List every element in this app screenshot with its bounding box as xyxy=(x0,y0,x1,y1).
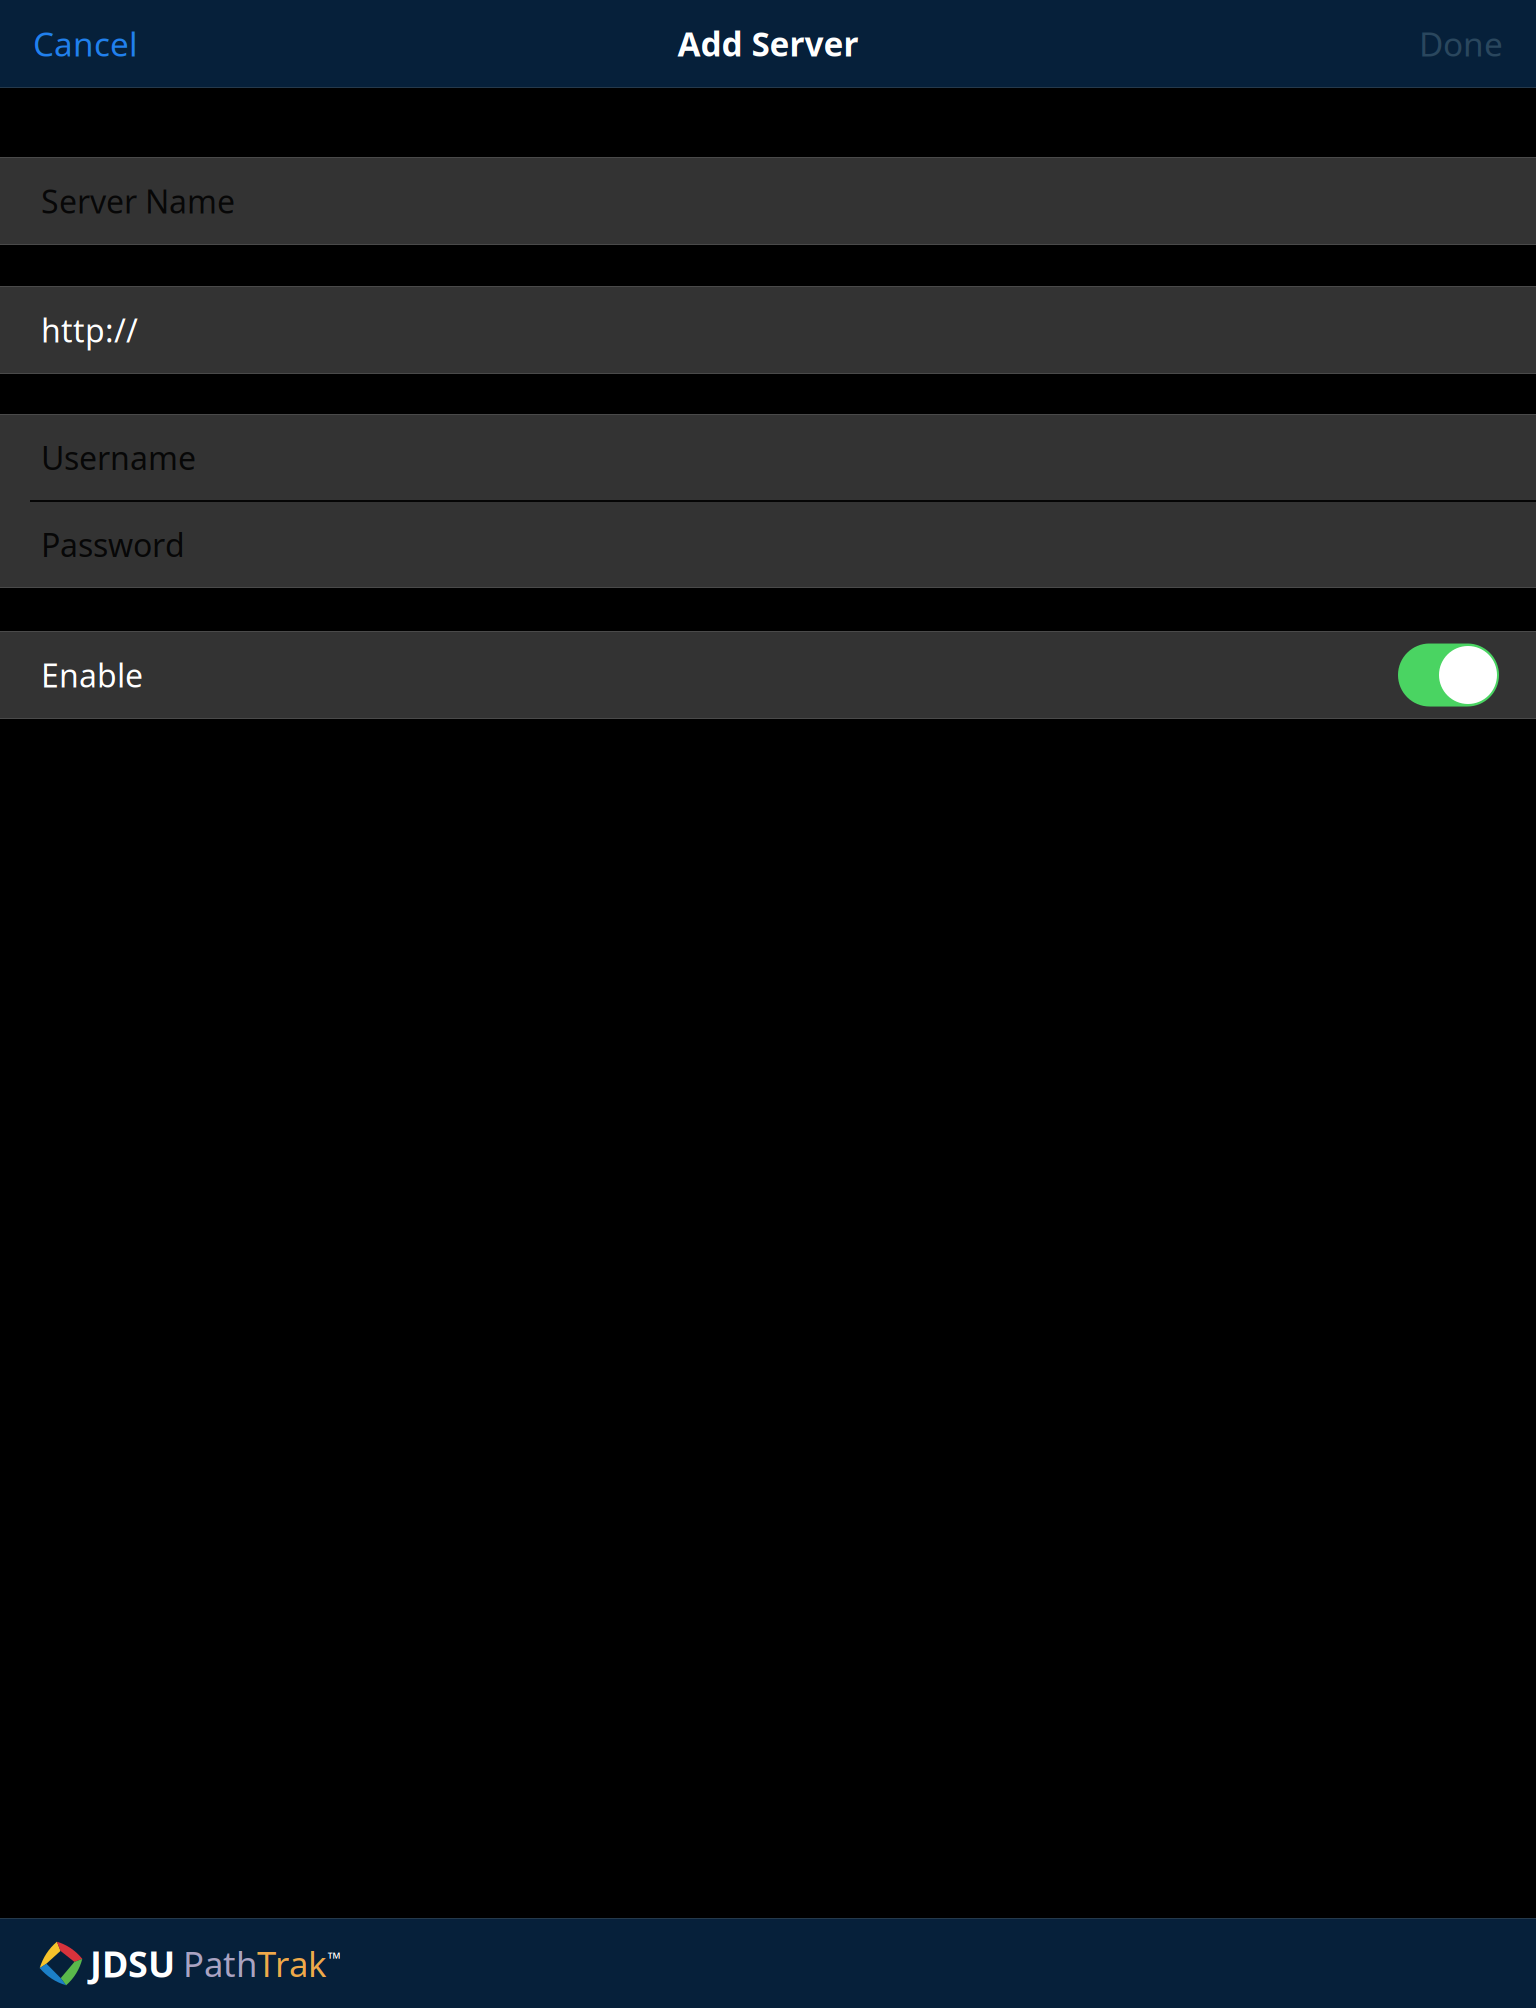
staticText: ™ xyxy=(327,1946,340,1969)
button[interactable]: Server Name xyxy=(0,158,1536,244)
staticText: Username xyxy=(41,436,196,479)
staticText: JDSU xyxy=(90,1940,175,1987)
staticText: Enable xyxy=(41,654,143,696)
staticText: Trak xyxy=(257,1940,327,1986)
button[interactable]: Password xyxy=(0,502,1536,587)
button[interactable]: http:// xyxy=(0,287,1536,373)
button[interactable]: Done xyxy=(1403,0,1536,87)
staticText: Path xyxy=(183,1940,257,1986)
staticText: Done xyxy=(1419,21,1503,66)
button[interactable]: Enable xyxy=(0,632,1536,718)
button[interactable]: Cancel xyxy=(0,0,154,87)
staticText: Add Server xyxy=(677,21,858,66)
button[interactable]: Username xyxy=(0,415,1536,500)
staticText: Cancel xyxy=(33,21,138,66)
staticText: Password xyxy=(41,523,185,566)
staticText: Server Name xyxy=(41,180,235,222)
staticText: http:// xyxy=(41,309,138,351)
